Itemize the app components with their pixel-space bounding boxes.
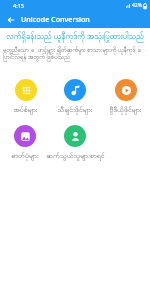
staticText: Unicode Conversion bbox=[21, 14, 90, 24]
button[interactable]: သီချင်းဖိုင်များ bbox=[57, 79, 93, 115]
button[interactable]: ဗွီဒီယိုဖိုင်များ bbox=[109, 79, 142, 115]
staticText: မတူညီသော ေဖာင့်များ ချိတ်ဆက်မွား စာသားမျ… bbox=[3, 46, 147, 62]
button[interactable]: အပ်စ်များ bbox=[13, 79, 38, 115]
staticText: 42% bbox=[132, 2, 142, 9]
button[interactable]: Back bbox=[0, 11, 21, 28]
staticText: လက်ရှိခန်းသည် ယူနီကုဒ်ကို အသုံးပြုထားပါသ… bbox=[3, 31, 147, 43]
staticText: 4:15 bbox=[13, 2, 24, 9]
staticText: ဆက်သွယ်သူများစာရင် bbox=[46, 151, 105, 161]
button[interactable]: ဆက်သွယ်သူများစာရင် bbox=[50, 125, 100, 161]
button[interactable]: ဓာတ်ပုံများ bbox=[11, 125, 39, 161]
staticText: ဓာတ်ပုံများ bbox=[11, 151, 39, 161]
staticText: ဗွီဒီယိုဖိုင်များ bbox=[109, 105, 142, 115]
staticText: သီချင်းဖိုင်များ bbox=[57, 105, 93, 115]
staticText: အပ်စ်များ bbox=[13, 105, 38, 115]
